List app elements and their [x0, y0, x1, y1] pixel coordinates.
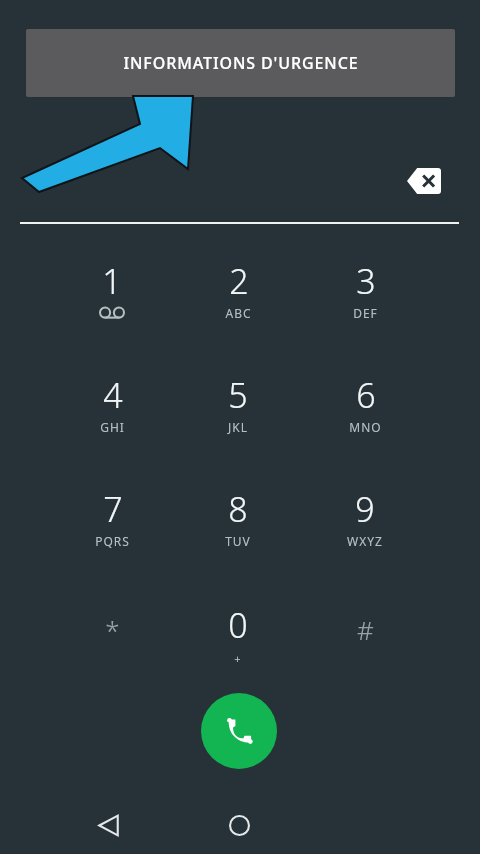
- staticText: TUV: [225, 533, 251, 549]
- button[interactable]: Back: [76, 796, 140, 854]
- staticText: INFORMATIONS D'URGENCE: [123, 52, 359, 74]
- button[interactable]: 5: [180, 360, 296, 454]
- button[interactable]: #: [307, 590, 423, 684]
- staticText: #: [357, 612, 374, 647]
- button[interactable]: Call: [201, 693, 277, 769]
- button[interactable]: 0: [180, 590, 296, 684]
- button[interactable]: INFORMATIONS D'URGENCE: [26, 29, 455, 97]
- button[interactable]: 3: [307, 246, 423, 340]
- staticText: MNO: [349, 419, 382, 435]
- staticText: 3: [356, 258, 376, 304]
- button[interactable]: 1: [54, 246, 170, 340]
- staticText: JKL: [228, 419, 248, 435]
- staticText: GHI: [100, 419, 125, 435]
- staticText: 4: [103, 372, 123, 418]
- staticText: ABC: [225, 305, 252, 321]
- button[interactable]: 2: [180, 246, 296, 340]
- staticText: 5: [228, 372, 248, 418]
- button[interactable]: 9: [307, 474, 423, 568]
- staticText: PQRS: [95, 533, 130, 549]
- staticText: *: [105, 612, 120, 647]
- staticText: 6: [356, 372, 376, 418]
- button[interactable]: 8: [180, 474, 296, 568]
- staticText: 1: [102, 258, 122, 304]
- button[interactable]: 7: [54, 474, 170, 568]
- staticText: 2: [229, 258, 249, 304]
- staticText: DEF: [353, 305, 378, 321]
- button[interactable]: Home: [207, 796, 271, 854]
- button[interactable]: *: [54, 590, 170, 684]
- staticText: +: [234, 651, 242, 666]
- button[interactable]: 6: [307, 360, 423, 454]
- button[interactable]: 4: [54, 360, 170, 454]
- staticText: 8: [228, 486, 248, 532]
- staticText: 7: [103, 486, 123, 532]
- staticText: 0: [228, 602, 248, 648]
- button[interactable]: Backspace: [399, 160, 449, 202]
- staticText: WXYZ: [347, 533, 383, 549]
- staticText: 9: [355, 486, 375, 532]
